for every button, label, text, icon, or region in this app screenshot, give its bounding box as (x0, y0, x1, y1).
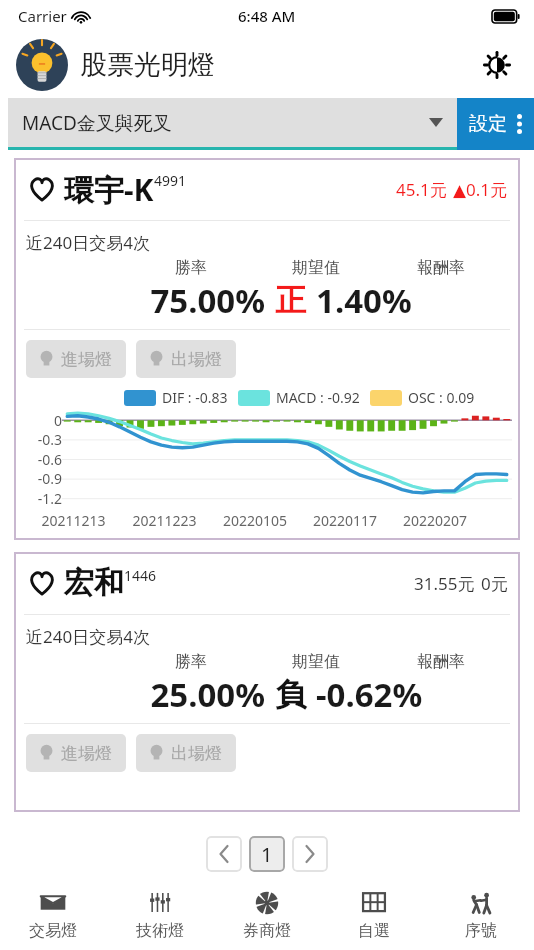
button[interactable]: MACD金叉與死叉 (8, 98, 457, 147)
staticText: Carrier (18, 6, 67, 26)
staticText: 20220105 (210, 511, 300, 530)
staticText: ▲0.1元 (453, 178, 508, 201)
staticText: 1 (261, 841, 273, 868)
staticText: 進場燈 (61, 349, 112, 370)
staticText: 自選 (358, 921, 390, 941)
button[interactable]: Previous page (206, 836, 242, 872)
staticText: 勝率 (124, 652, 258, 672)
staticText: 0元 (481, 572, 508, 595)
staticText: 20220117 (300, 511, 390, 530)
staticText: 券商燈 (243, 921, 291, 941)
button[interactable]: 券商燈 (213, 880, 320, 950)
button[interactable]: 自選 (320, 880, 427, 950)
staticText: 近240日交易4次 (26, 231, 150, 254)
button[interactable]: Toggle dark mode (476, 44, 518, 86)
button[interactable]: 技術燈 (106, 880, 213, 950)
staticText: 期望值 (258, 652, 374, 672)
staticText: 20220207 (390, 511, 480, 530)
button[interactable]: Add to favorites (26, 567, 58, 599)
staticText: DIF : -0.83 (162, 388, 228, 407)
staticText: 出場燈 (171, 349, 222, 370)
staticText: 75.00% (74, 278, 265, 323)
button[interactable]: 出場燈 (136, 734, 236, 772)
staticText: 0 (22, 411, 62, 430)
staticText: 勝率 (124, 258, 258, 278)
button[interactable]: Add to favorites (14, 158, 520, 540)
staticText: 1446 (124, 566, 157, 585)
staticText: 20211213 (28, 511, 119, 530)
staticText: -0.62% (316, 672, 508, 717)
staticText: 1.40% (316, 278, 508, 323)
staticText: 31.55元 (414, 572, 475, 595)
button[interactable]: 出場燈 (136, 340, 236, 378)
button[interactable]: Add to favorites (14, 552, 520, 812)
staticText: 宏和 (64, 564, 124, 602)
staticText: MACD : -0.92 (276, 388, 360, 407)
staticText: 序號 (465, 921, 497, 941)
staticText: 近240日交易4次 (26, 625, 150, 648)
staticText: -0.6 (22, 450, 62, 469)
staticText: 4991 (154, 171, 187, 190)
button[interactable]: Next page (292, 836, 328, 872)
staticText: 45.1元 (396, 178, 447, 201)
staticText: 交易燈 (29, 921, 77, 941)
staticText: 20211223 (119, 511, 210, 530)
staticText: 報酬率 (374, 652, 508, 672)
staticText: 股票光明燈 (80, 48, 215, 82)
button[interactable]: 1 (249, 836, 285, 872)
staticText: MACD金叉與死叉 (22, 110, 172, 136)
button[interactable]: 設定 (457, 98, 534, 150)
staticText: 設定 (469, 112, 507, 136)
staticText: 正 (275, 281, 306, 320)
staticText: 技術燈 (136, 921, 184, 941)
staticText: -0.9 (22, 469, 62, 488)
staticText: 環宇-K (64, 169, 154, 210)
staticText: 期望值 (258, 258, 374, 278)
staticText: 報酬率 (374, 258, 508, 278)
staticText: 25.00% (74, 672, 265, 717)
staticText: -0.3 (22, 430, 62, 449)
button[interactable]: Add to favorites (26, 173, 58, 205)
button[interactable]: 進場燈 (26, 734, 126, 772)
button[interactable]: 序號 (427, 880, 534, 950)
staticText: -1.2 (22, 489, 62, 508)
staticText: 出場燈 (171, 743, 222, 764)
staticText: 進場燈 (61, 743, 112, 764)
button[interactable]: 進場燈 (26, 340, 126, 378)
staticText: OSC : 0.09 (408, 388, 475, 407)
staticText: 6:48 AM (238, 6, 296, 26)
staticText: 負 (275, 675, 306, 714)
button[interactable]: 交易燈 (0, 880, 106, 950)
